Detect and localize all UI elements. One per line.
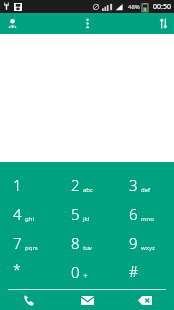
- staticText: 0: [71, 262, 80, 282]
- staticText: 3: [129, 175, 138, 195]
- button[interactable]: *: [0, 257, 58, 286]
- staticText: pqrs: [25, 244, 38, 252]
- staticText: 6: [129, 204, 138, 224]
- button[interactable]: Contacts: [0, 13, 24, 34]
- button[interactable]: 2: [58, 170, 116, 199]
- staticText: ghi: [25, 215, 34, 223]
- staticText: 5: [71, 204, 80, 224]
- staticText: 2: [71, 175, 80, 195]
- button[interactable]: 6: [116, 199, 174, 228]
- staticText: def: [141, 186, 151, 194]
- button[interactable]: 8: [58, 228, 116, 257]
- button[interactable]: 7: [0, 228, 58, 257]
- staticText: 9: [129, 233, 138, 253]
- staticText: 8: [71, 233, 80, 253]
- staticText: 00:50: [153, 2, 171, 12]
- button[interactable]: Call: [0, 290, 58, 310]
- button[interactable]: 9: [116, 228, 174, 257]
- button[interactable]: Send message: [58, 290, 116, 310]
- button[interactable]: 5: [58, 199, 116, 228]
- staticText: 7: [13, 233, 22, 253]
- staticText: 48%: [128, 3, 140, 11]
- button[interactable]: 0: [58, 257, 116, 286]
- staticText: jkl: [83, 215, 90, 223]
- staticText: 4: [13, 204, 22, 224]
- staticText: abc: [83, 186, 93, 194]
- button[interactable]: Backspace: [116, 290, 174, 310]
- staticText: tuv: [83, 244, 92, 252]
- staticText: #: [129, 262, 139, 281]
- staticText: 1: [13, 175, 22, 195]
- button[interactable]: #: [116, 257, 174, 286]
- button[interactable]: 1: [0, 170, 58, 199]
- button[interactable]: 4: [0, 199, 58, 228]
- button[interactable]: Sort: [152, 13, 174, 34]
- staticText: +: [83, 270, 88, 281]
- staticText: *: [13, 260, 21, 279]
- button[interactable]: 3: [116, 170, 174, 199]
- staticText: wxyz: [141, 244, 155, 252]
- staticText: mno: [141, 215, 154, 223]
- button[interactable]: More options: [77, 13, 97, 34]
